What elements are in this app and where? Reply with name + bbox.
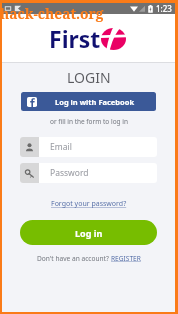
- button[interactable]: Forgot your password?: [51, 199, 127, 209]
- staticText: Log in: [75, 227, 103, 239]
- button[interactable]: Email: [20, 137, 157, 157]
- staticText: Password: [50, 167, 89, 179]
- button[interactable]: Log in with Facebook: [21, 92, 156, 111]
- staticText: Don't have an account?: [37, 254, 111, 263]
- staticText: LOGIN: [67, 68, 111, 87]
- staticText: or fill in the form to log in: [50, 117, 128, 126]
- staticText: Email: [50, 141, 72, 153]
- staticText: 1:23: [156, 3, 172, 14]
- staticText: hack-cheat.org: [0, 4, 104, 23]
- button[interactable]: Log in: [20, 220, 157, 245]
- button[interactable]: REGISTER: [111, 254, 141, 263]
- staticText: First: [49, 23, 101, 54]
- button[interactable]: Password: [20, 163, 157, 183]
- staticText: Log in with Facebook: [55, 97, 135, 107]
